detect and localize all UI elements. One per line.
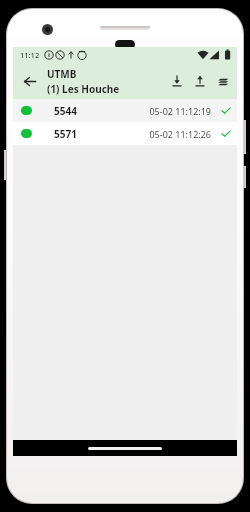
staticText: 11:12: [20, 50, 40, 60]
staticText: 5544: [54, 104, 77, 118]
staticText: 05-02 11:12:26: [149, 128, 211, 140]
button[interactable]: Back: [17, 69, 41, 93]
button[interactable]: 5571: [13, 122, 237, 145]
staticText: (1) Les Houche: [47, 82, 120, 96]
button[interactable]: More options: [212, 70, 234, 92]
button[interactable]: Download: [166, 70, 188, 92]
staticText: 05-02 11:12:19: [149, 105, 211, 117]
staticText: UTMB: [47, 67, 77, 81]
button[interactable]: 5544: [13, 99, 237, 122]
staticText: 5571: [54, 127, 77, 141]
button[interactable]: Upload: [189, 70, 211, 92]
